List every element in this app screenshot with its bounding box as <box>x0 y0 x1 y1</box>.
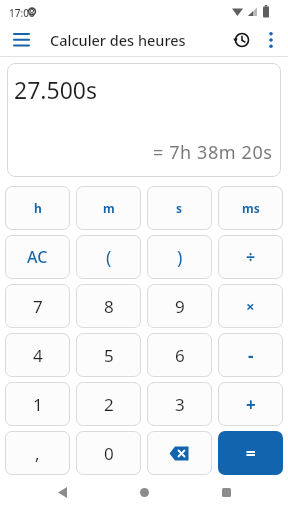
staticText: m <box>103 200 115 216</box>
staticText: 9 <box>175 295 185 318</box>
button[interactable]: 3 <box>147 382 212 426</box>
button[interactable] <box>206 480 246 504</box>
button[interactable]: m <box>76 186 141 230</box>
button[interactable] <box>6 25 36 55</box>
button[interactable] <box>258 27 284 53</box>
button[interactable] <box>147 431 212 475</box>
staticText: Calculer des heures <box>50 30 186 50</box>
button[interactable]: ( <box>76 235 141 279</box>
button[interactable]: 6 <box>147 333 212 377</box>
staticText: , <box>35 442 40 465</box>
button[interactable]: × <box>218 284 283 328</box>
staticText: ) <box>177 245 183 270</box>
button[interactable]: AC <box>5 235 70 279</box>
button[interactable]: = <box>218 431 283 475</box>
button[interactable]: 9 <box>147 284 212 328</box>
staticText: 27.500s <box>14 74 97 105</box>
button[interactable]: ) <box>147 235 212 279</box>
button[interactable]: s <box>147 186 212 230</box>
button[interactable]: ÷ <box>218 235 283 279</box>
button[interactable] <box>124 480 164 504</box>
staticText: ÷ <box>246 246 256 268</box>
staticText: - <box>248 344 254 367</box>
staticText: ( <box>106 245 112 270</box>
staticText: 17:08 <box>9 6 35 20</box>
button[interactable] <box>42 480 82 504</box>
staticText: 4 <box>33 344 43 367</box>
button[interactable]: - <box>218 333 283 377</box>
button[interactable]: ms <box>218 186 283 230</box>
staticText: = <box>246 442 256 465</box>
staticText: s <box>176 200 183 216</box>
button[interactable] <box>224 24 258 56</box>
staticText: AC <box>27 246 48 268</box>
button[interactable]: 4 <box>5 333 70 377</box>
staticText: 1 <box>33 393 43 416</box>
button[interactable]: 7 <box>5 284 70 328</box>
button[interactable]: + <box>218 382 283 426</box>
staticText: 0 <box>104 442 114 465</box>
staticText: 5 <box>104 344 114 367</box>
button[interactable]: 2 <box>76 382 141 426</box>
staticText: h <box>34 200 42 216</box>
staticText: 2 <box>104 393 114 416</box>
staticText: × <box>246 296 255 316</box>
button[interactable]: , <box>5 431 70 475</box>
staticText: 6 <box>175 344 185 367</box>
button[interactable]: 0 <box>76 431 141 475</box>
staticText: ms <box>242 200 260 216</box>
staticText: = 7h 38m 20s <box>153 140 273 165</box>
button[interactable]: 8 <box>76 284 141 328</box>
staticText: 3 <box>175 393 185 416</box>
staticText: 8 <box>104 295 114 318</box>
button[interactable]: h <box>5 186 70 230</box>
button[interactable]: 1 <box>5 382 70 426</box>
staticText: + <box>246 393 256 416</box>
staticText: 7 <box>33 295 43 318</box>
button[interactable]: 5 <box>76 333 141 377</box>
